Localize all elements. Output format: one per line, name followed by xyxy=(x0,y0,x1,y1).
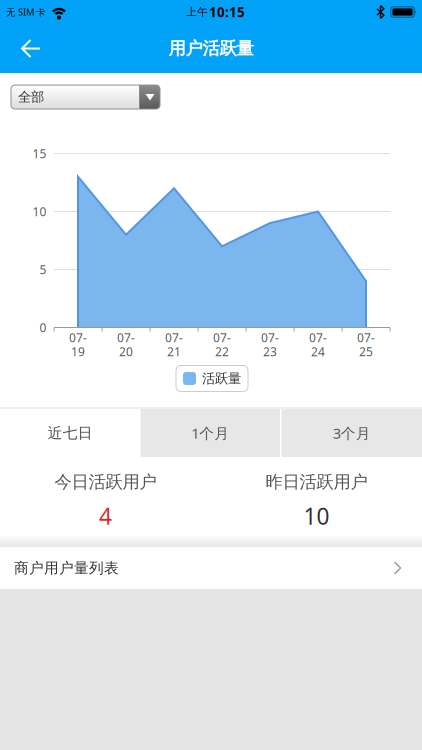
staticText: 07- xyxy=(309,329,327,345)
staticText: 近七日 xyxy=(48,424,93,442)
staticText: 07- xyxy=(69,329,87,345)
staticText: 07- xyxy=(357,329,375,345)
staticText: 07- xyxy=(165,329,183,345)
staticText: 4 xyxy=(99,501,112,531)
staticText: 21 xyxy=(167,343,181,359)
button[interactable]: 1个月 xyxy=(140,409,280,457)
staticText: 10 xyxy=(32,203,46,219)
staticText: 无 SIM 卡 xyxy=(6,6,45,18)
button[interactable]: 商户用户量列表 xyxy=(0,547,422,589)
staticText: 商户用户量列表 xyxy=(14,559,119,577)
staticText: 用户活跃量 xyxy=(168,38,253,59)
button[interactable]: 活跃量 xyxy=(176,365,248,391)
staticText: 24 xyxy=(311,343,325,359)
staticText: 10 xyxy=(303,501,329,531)
staticText: 20 xyxy=(119,343,133,359)
staticText: 22 xyxy=(215,343,229,359)
button[interactable]: 3个月 xyxy=(281,409,422,457)
staticText: 19 xyxy=(71,343,85,359)
staticText: 25 xyxy=(359,343,373,359)
button[interactable]: Back xyxy=(0,24,56,72)
staticText: 15 xyxy=(32,145,46,161)
staticText: 5 xyxy=(39,261,46,277)
staticText: 07- xyxy=(117,329,135,345)
staticText: 23 xyxy=(263,343,277,359)
staticText: 0 xyxy=(39,319,46,335)
staticText: 07- xyxy=(213,329,231,345)
staticText: 07- xyxy=(261,329,279,345)
staticText: 活跃量 xyxy=(202,370,241,387)
staticText: 10:15 xyxy=(209,3,245,21)
staticText: 昨日活跃用户 xyxy=(265,471,367,493)
staticText: 今日活跃用户 xyxy=(54,471,156,493)
staticText: 上午 xyxy=(186,5,208,18)
button[interactable]: 全部 xyxy=(11,85,160,109)
staticText: 3个月 xyxy=(333,423,371,443)
button[interactable]: 近七日 xyxy=(0,409,140,457)
staticText: 1个月 xyxy=(191,423,229,443)
staticText: 全部 xyxy=(18,89,44,105)
